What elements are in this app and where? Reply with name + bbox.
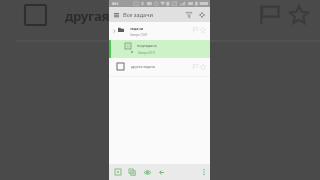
- button[interactable]: Add task: [113, 164, 122, 180]
- button[interactable]: Add sub-task: [127, 164, 136, 180]
- staticText: другая задача: [65, 7, 158, 25]
- button[interactable]: задачи: [109, 22, 210, 40]
- button[interactable]: Back: [157, 164, 165, 180]
- button[interactable]: More options: [200, 164, 208, 180]
- staticText: задачи: [130, 26, 144, 31]
- button[interactable]: Menu: [111, 7, 122, 22]
- button[interactable]: Filter: [183, 7, 194, 22]
- staticText: подзадача: [137, 43, 157, 48]
- button[interactable]: подзадача: [109, 40, 210, 58]
- staticText: Все задачи: [123, 11, 153, 19]
- staticText: другая задача: [131, 64, 156, 69]
- staticText: Завтра 20:11: [138, 51, 156, 55]
- button[interactable]: другая задача: [109, 58, 210, 76]
- staticText: Завтра 13:01: [130, 33, 148, 37]
- button[interactable]: Show completed: [142, 164, 152, 180]
- button[interactable]: Move: [196, 7, 207, 22]
